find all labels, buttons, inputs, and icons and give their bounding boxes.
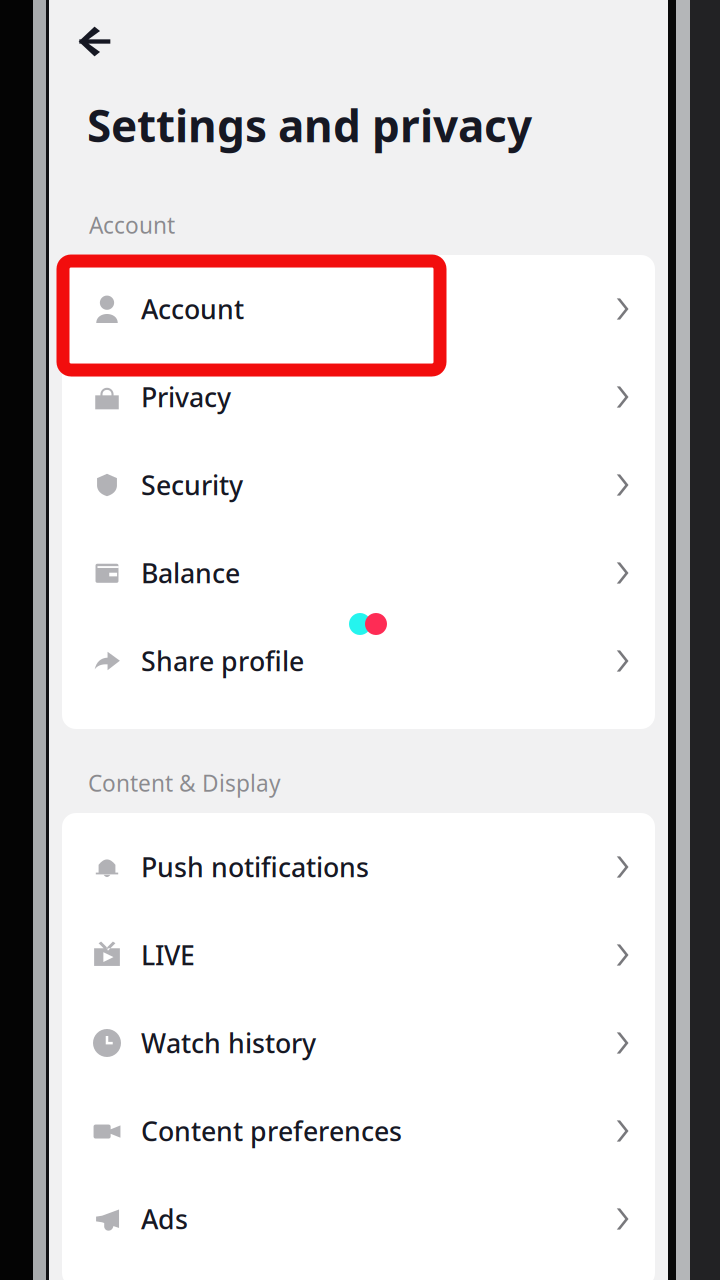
button[interactable]: Privacy [62,353,655,441]
button[interactable]: Account [62,265,655,353]
button[interactable]: LIVE [62,911,655,999]
button[interactable]: Balance [62,529,655,617]
button[interactable]: Back [68,16,121,67]
button[interactable]: Content preferences [62,1087,655,1175]
button[interactable]: Security [62,441,655,529]
staticText: Account [141,291,244,327]
staticText: Ads [141,1201,188,1237]
staticText: Share profile [141,643,304,679]
button[interactable]: Push notifications [62,823,655,911]
staticText: Watch history [141,1025,316,1061]
staticText: Settings and privacy [87,96,532,154]
staticText: Balance [141,555,240,591]
button[interactable]: Watch history [62,999,655,1087]
staticText: Content preferences [141,1113,402,1149]
button[interactable]: Ads [62,1175,655,1263]
staticText: Account [89,210,175,240]
button[interactable]: Share profile [62,617,655,705]
staticText: Security [141,467,243,503]
staticText: LIVE [141,937,195,973]
staticText: Content & Display [88,768,281,798]
staticText: Privacy [141,379,231,415]
staticText: Push notifications [141,849,369,885]
